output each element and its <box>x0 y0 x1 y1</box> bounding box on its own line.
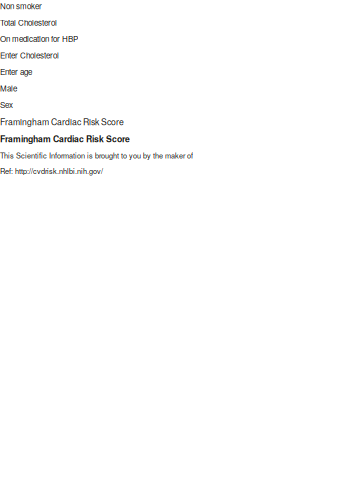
staticText: This Scientific Information is brought t… <box>0 150 193 160</box>
staticText: Total Cholesterol <box>0 16 57 28</box>
staticText: Ref: http://cvdrisk.nhlbi.nih.gov/ <box>0 165 103 176</box>
staticText: Framingham Cardiac Risk Score <box>0 133 130 145</box>
staticText: On medication for HBP <box>0 33 78 44</box>
staticText: Enter age <box>0 66 32 77</box>
staticText: Male <box>0 82 17 94</box>
staticText: Framingham Cardiac Risk Score <box>0 115 124 128</box>
staticText: Enter Cholesterol <box>0 49 59 61</box>
staticText: Non smoker <box>0 0 42 11</box>
staticText: Sex <box>0 99 13 110</box>
